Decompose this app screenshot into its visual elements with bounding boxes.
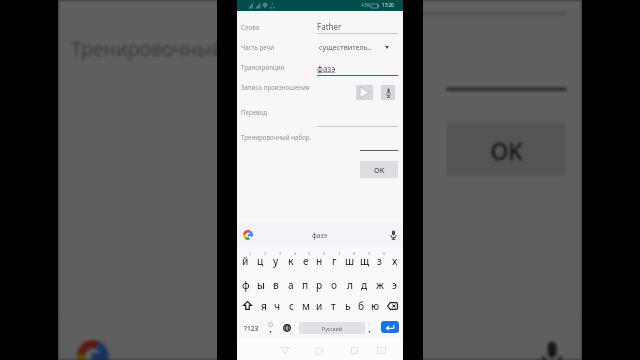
staticText: б — [358, 299, 365, 313]
button[interactable]: Comma and emoji — [264, 317, 276, 339]
button[interactable]: м — [298, 294, 313, 317]
button[interactable]: Voice input — [390, 230, 397, 240]
button[interactable]: Home — [312, 344, 325, 357]
button[interactable]: Record pronunciation — [381, 85, 395, 100]
button[interactable]: Backspace — [384, 294, 401, 317]
button[interactable]: Change language — [281, 317, 293, 339]
button[interactable]: н — [312, 249, 327, 272]
staticText: Транскрипция — [241, 63, 285, 71]
staticText: п — [302, 278, 309, 292]
staticText: 7 — [338, 251, 341, 256]
staticText: 8 — [353, 251, 356, 256]
staticText: и — [316, 299, 323, 313]
button[interactable]: ?123 — [240, 317, 262, 339]
button[interactable]: з — [372, 249, 387, 272]
staticText: э — [392, 278, 398, 292]
button[interactable]: Period — [363, 317, 375, 339]
button[interactable]: Shift — [239, 294, 256, 317]
button[interactable]: г — [327, 249, 342, 272]
button[interactable]: Hide keyboard — [375, 344, 388, 357]
button[interactable]: Google — [77, 340, 108, 360]
button[interactable]: д — [357, 273, 372, 296]
button[interactable]: в — [268, 273, 283, 296]
button[interactable]: к — [283, 249, 298, 272]
button[interactable]: Back — [278, 344, 291, 357]
staticText: 0 — [383, 251, 386, 256]
button[interactable]: р — [312, 273, 327, 296]
button[interactable]: ш — [342, 249, 357, 272]
button[interactable]: я — [256, 294, 271, 317]
button[interactable]: ц — [253, 249, 268, 272]
button[interactable]: Recents — [348, 344, 361, 357]
staticText: ь — [345, 299, 351, 313]
staticText: к — [288, 254, 294, 268]
staticText: 43% — [361, 2, 371, 8]
staticText: 4 — [294, 251, 297, 256]
staticText: ц — [257, 254, 264, 268]
staticText: существитель.. — [319, 42, 372, 52]
staticText: Тренировочный набор. — [241, 133, 312, 141]
button[interactable]: э — [387, 273, 402, 296]
button[interactable]: п — [298, 273, 313, 296]
button[interactable]: Expand part of speech — [380, 41, 393, 53]
staticText: Русский — [322, 325, 342, 332]
button[interactable]: Play recording — [356, 85, 373, 100]
staticText: 17:20 — [382, 2, 394, 8]
staticText: т — [331, 299, 336, 313]
button[interactable]: а — [283, 273, 298, 296]
button[interactable]: ы — [253, 273, 268, 296]
staticText: с — [289, 299, 295, 313]
button[interactable]: Enter — [381, 321, 399, 333]
staticText: OK — [490, 135, 525, 166]
staticText: Часть речи — [241, 43, 275, 51]
staticText: 5 — [308, 251, 311, 256]
staticText: щ — [360, 254, 370, 268]
staticText: м — [302, 299, 310, 313]
button[interactable]: л — [342, 273, 357, 296]
button[interactable]: о — [327, 273, 342, 296]
staticText: 1 — [249, 251, 252, 256]
staticText: Запись произношения — [241, 83, 310, 91]
staticText: з — [377, 254, 382, 268]
button[interactable]: и — [312, 294, 327, 317]
staticText: фазэ — [312, 231, 328, 240]
staticText: ю — [371, 299, 380, 313]
button[interactable]: й — [238, 249, 253, 272]
staticText: ж — [376, 278, 384, 292]
button[interactable]: ж — [372, 273, 387, 296]
staticText: 6 — [323, 251, 326, 256]
staticText: OK — [374, 165, 385, 175]
button[interactable]: щ — [357, 249, 372, 272]
staticText: в — [273, 278, 279, 292]
staticText: ч — [274, 299, 281, 313]
button[interactable]: ф — [238, 273, 253, 296]
staticText: 9 — [368, 251, 371, 256]
button[interactable]: х — [387, 249, 402, 272]
staticText: я — [261, 299, 267, 313]
button[interactable]: т — [326, 294, 341, 317]
staticText: ы — [257, 278, 265, 292]
button[interactable]: OK — [360, 161, 398, 178]
staticText: н — [316, 254, 323, 268]
button[interactable]: ь — [340, 294, 355, 317]
staticText: г — [332, 254, 337, 268]
button[interactable]: Voice input — [541, 340, 563, 360]
button[interactable]: OK — [446, 122, 566, 176]
button[interactable]: е — [298, 249, 313, 272]
button[interactable]: ч — [270, 294, 285, 317]
staticText: 2 — [264, 251, 267, 256]
staticText: р — [316, 278, 323, 292]
button[interactable]: с — [284, 294, 299, 317]
staticText: Слово — [241, 23, 260, 31]
button[interactable]: у — [268, 249, 283, 272]
button[interactable]: б — [354, 294, 369, 317]
button[interactable]: ю — [368, 294, 383, 317]
staticText: е — [303, 254, 309, 268]
staticText: Тренировочный набор. — [71, 34, 295, 59]
staticText: ф — [242, 278, 250, 292]
staticText: ш — [345, 254, 355, 268]
staticText: 3 — [279, 251, 282, 256]
button[interactable]: Русский — [299, 322, 365, 334]
button[interactable]: Google — [243, 230, 253, 240]
staticText: ?123 — [244, 324, 259, 333]
